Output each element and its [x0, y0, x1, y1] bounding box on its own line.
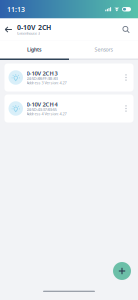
staticText: Address 3 Version: 4.27 — [26, 81, 66, 85]
staticText: Greenhouse 3 — [17, 31, 40, 35]
staticText: 0-10V 2CH — [17, 23, 51, 31]
staticText: Address 4 Version: 4.27 — [26, 112, 66, 116]
button[interactable]: 0-10V 2CH 4 — [4, 94, 133, 122]
staticText: Sensors — [94, 46, 112, 53]
staticText: 0-10V 2CH 3 — [26, 70, 57, 76]
button[interactable]: Add device — [113, 262, 131, 280]
button[interactable]: Sensors — [69, 40, 138, 58]
staticText: Lights — [27, 46, 42, 53]
staticText: 11:13 — [7, 5, 25, 14]
button[interactable]: Lights — [0, 40, 69, 58]
button[interactable]: Search — [118, 18, 134, 40]
button[interactable]: Back — [0, 18, 17, 40]
button[interactable]: 0-10V 2CH 3 — [4, 63, 133, 91]
staticText: 0-10V 2CH 4 — [26, 101, 57, 107]
staticText: 24:5D:43:37:83:65 — [26, 107, 56, 112]
staticText: 24:5D:88:FF:3B:83 — [26, 76, 57, 81]
